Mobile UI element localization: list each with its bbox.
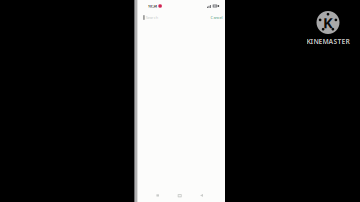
button[interactable]: Cancel <box>209 13 223 22</box>
staticText: Search <box>146 15 158 20</box>
staticText: 10:34 <box>148 3 157 9</box>
staticText: K <box>323 13 333 32</box>
staticText: KINEMASTER <box>306 37 349 46</box>
button[interactable]: Back <box>197 190 206 200</box>
button[interactable]: Home <box>174 191 185 201</box>
button[interactable]: Recent apps <box>153 191 162 200</box>
staticText: Cancel <box>210 15 222 20</box>
